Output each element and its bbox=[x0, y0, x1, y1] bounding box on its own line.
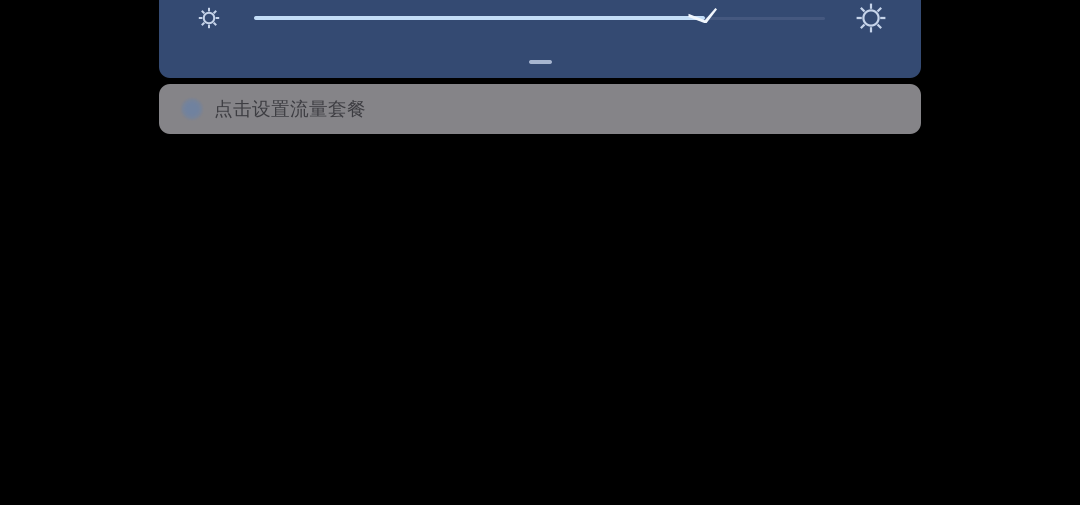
button[interactable]: Expand quick settings bbox=[529, 60, 552, 64]
button[interactable]: Decrease brightness bbox=[197, 6, 221, 30]
button[interactable]: Increase brightness bbox=[854, 1, 888, 35]
button[interactable]: Brightness bbox=[254, 17, 825, 20]
button[interactable]: 点击设置流量套餐 bbox=[159, 84, 921, 134]
staticText: 点击设置流量套餐 bbox=[214, 97, 366, 120]
